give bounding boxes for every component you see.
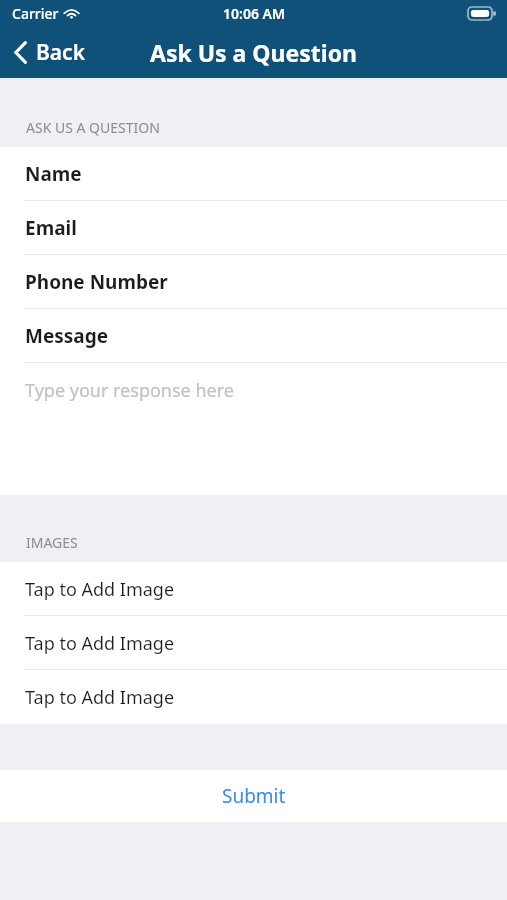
staticText: ASK US A QUESTION xyxy=(26,118,160,137)
button[interactable]: Tap to Add Image xyxy=(0,562,507,616)
staticText: Tap to Add Image xyxy=(25,631,175,656)
other: Battery xyxy=(468,7,496,20)
button[interactable]: Name xyxy=(0,147,507,201)
button[interactable]: Tap to Add Image xyxy=(0,670,507,724)
button[interactable]: Type your response here xyxy=(0,363,507,495)
staticText: Back xyxy=(36,38,86,67)
staticText: Carrier xyxy=(12,4,59,23)
other: Wi-Fi xyxy=(64,8,79,19)
staticText: Tap to Add Image xyxy=(25,577,175,602)
staticText: Type your response here xyxy=(25,378,234,403)
staticText: Ask Us a Question xyxy=(150,37,357,68)
staticText: Name xyxy=(25,161,82,187)
button[interactable]: Email xyxy=(0,201,507,255)
button[interactable]: Phone Number xyxy=(0,255,507,309)
button[interactable]: Tap to Add Image xyxy=(0,616,507,670)
staticText: Email xyxy=(25,215,77,241)
staticText: Message xyxy=(25,323,109,349)
button[interactable]: Message xyxy=(0,309,507,363)
staticText: Phone Number xyxy=(25,269,168,295)
staticText: 10:06 AM xyxy=(223,4,285,23)
staticText: Submit xyxy=(222,783,286,809)
staticText: Tap to Add Image xyxy=(25,685,175,710)
staticText: IMAGES xyxy=(26,533,78,552)
button[interactable]: Back xyxy=(0,30,102,75)
button[interactable]: Submit xyxy=(0,770,507,822)
